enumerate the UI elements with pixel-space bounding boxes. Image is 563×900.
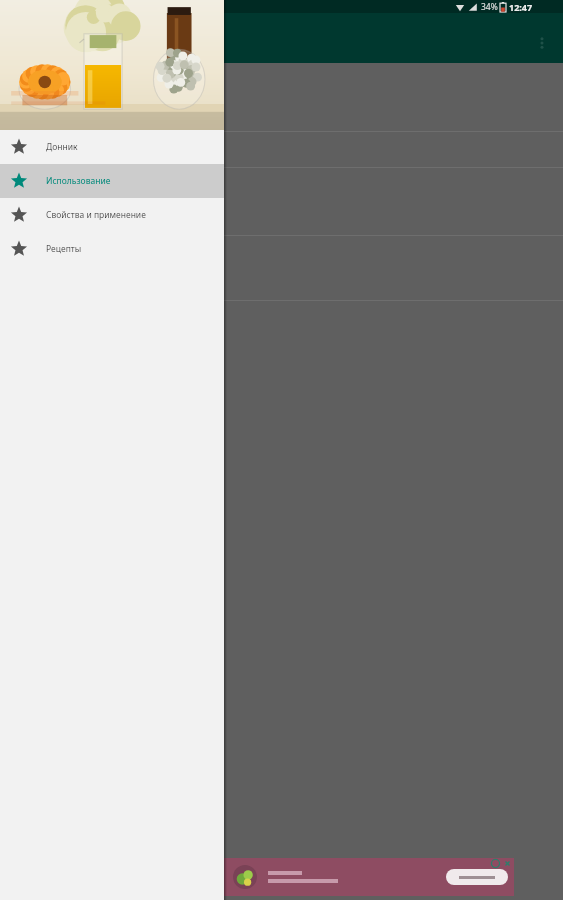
button[interactable]: Свойства и применение — [0, 198, 224, 232]
button[interactable] — [0, 0, 224, 130]
button[interactable]: Донник — [0, 130, 224, 164]
staticText: 12:47 — [509, 1, 533, 13]
staticText: Свойства и применение — [46, 209, 146, 221]
staticText: Донник — [46, 141, 78, 153]
staticText: Рецепты — [46, 243, 82, 255]
button[interactable]: Использование — [0, 164, 224, 198]
button[interactable] — [224, 858, 514, 896]
staticText: 34% — [481, 1, 498, 13]
button[interactable] — [446, 869, 508, 885]
button[interactable]: Рецепты — [0, 232, 224, 266]
staticText: Использование — [46, 175, 111, 187]
button[interactable]: More options — [525, 26, 559, 60]
